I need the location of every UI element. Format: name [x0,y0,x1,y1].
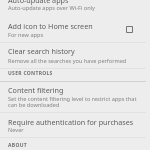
staticText: For new apps [8,31,44,39]
staticText: Add icon to Home screen [8,21,93,31]
button[interactable]: Add icon to Home screen checkbox [126,26,133,33]
button[interactable]: Require authentication for purchases [0,113,150,136]
staticText: Remove all the searches you have perform… [8,57,127,65]
button[interactable]: Auto-update apps [0,0,150,16]
staticText: Content filtering [8,85,64,95]
staticText: Set the content filtering level to restr… [8,95,145,109]
staticText: Never [8,126,24,134]
button[interactable]: Clear search history [0,43,150,68]
staticText: USER CONTROLS [8,70,53,77]
button[interactable]: Add icon to Home screen [0,17,150,42]
staticText: Clear search history [8,46,75,56]
staticText: Auto-update apps over Wi-Fi only [8,4,95,12]
staticText: ABOUT [8,142,27,149]
button[interactable]: Content filtering [0,82,150,111]
staticText: Require authentication for purchases [8,117,134,127]
staticText: Auto-update apps [8,0,69,5]
